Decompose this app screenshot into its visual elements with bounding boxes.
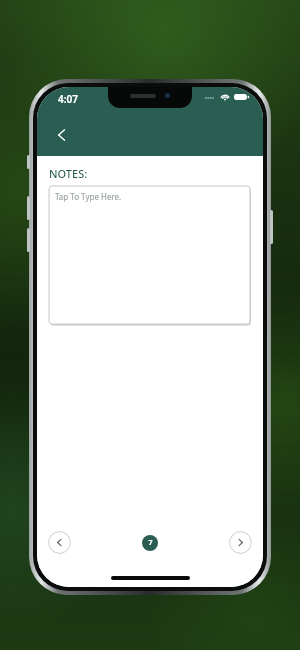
staticText: NOTES: — [49, 166, 88, 181]
button[interactable]: Back — [45, 118, 79, 152]
button[interactable]: 7 — [142, 535, 158, 551]
button[interactable]: Next — [229, 531, 252, 554]
staticText: 7 — [148, 538, 153, 548]
staticText: 4:07 — [58, 92, 78, 106]
staticText: Tap To Type Here. — [55, 191, 122, 202]
button[interactable]: Tap To Type Here. — [49, 186, 251, 325]
button[interactable]: Previous — [48, 531, 71, 554]
